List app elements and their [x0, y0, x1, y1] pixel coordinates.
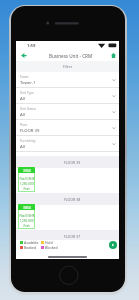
button[interactable]: Next	[109, 241, 117, 249]
staticText: All	[20, 96, 25, 102]
staticText: Hold	[45, 240, 53, 245]
button[interactable]: Furnishing	[16, 136, 119, 152]
staticText: Feet	[23, 224, 30, 228]
staticText: Flat/3 BHK	[19, 214, 35, 218]
button[interactable]: 3904	[18, 167, 35, 192]
staticText: FLOOR 39	[64, 160, 81, 165]
button[interactable]: Booked	[20, 245, 41, 250]
staticText: FLOOR 38	[64, 197, 81, 202]
button[interactable]: Back	[18, 50, 30, 61]
staticText: FLOOR 39	[20, 128, 40, 134]
staticText: Feet	[23, 187, 30, 191]
staticText: Furnishing	[20, 139, 36, 143]
staticText: 3804	[23, 205, 31, 209]
button[interactable]: Hold	[41, 240, 62, 245]
staticText: Tower-1	[20, 80, 36, 86]
staticText: Booked	[24, 245, 37, 250]
button[interactable]: Floor	[16, 120, 119, 136]
staticText: Filter	[63, 64, 73, 69]
staticText: 1,250.000 Sq	[18, 182, 35, 186]
staticText: FLOOR 37	[64, 234, 81, 239]
staticText: Available	[24, 240, 39, 245]
button[interactable]: Unit Status	[16, 104, 119, 120]
button[interactable]: Blocked	[41, 245, 62, 250]
button[interactable]: Available	[20, 240, 41, 245]
button[interactable]: Tower	[16, 72, 119, 88]
staticText: Floor	[20, 123, 28, 127]
staticText: All	[20, 144, 25, 150]
button[interactable]: 3804	[18, 204, 35, 229]
staticText: Unit Type	[20, 91, 34, 95]
staticText: Tower	[20, 75, 29, 79]
button[interactable]: Unit Type	[16, 88, 119, 104]
staticText: 1,250.000 Sq	[18, 219, 35, 223]
staticText: 1:59	[27, 43, 36, 49]
button[interactable]: Home	[108, 50, 119, 61]
staticText: All	[20, 112, 25, 118]
staticText: Unit Status	[20, 107, 36, 111]
staticText: Business Unit - CRM	[49, 53, 93, 59]
staticText: Flat/3 BHK	[19, 177, 35, 181]
staticText: 3904	[23, 168, 31, 172]
staticText: Blocked	[45, 245, 58, 250]
